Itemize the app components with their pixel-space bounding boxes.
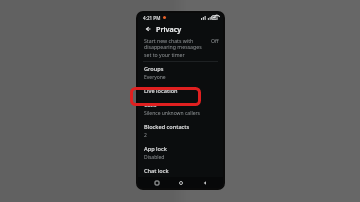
button[interactable]: Start new chats with disappearing messag… <box>138 36 223 61</box>
button[interactable]: Chat lock <box>138 164 223 177</box>
staticText: Disabled <box>144 154 165 161</box>
button[interactable]: Back <box>143 24 153 34</box>
button[interactable]: Recent apps <box>151 177 162 188</box>
staticText: Chat lock <box>144 167 169 174</box>
staticText: Off <box>211 37 219 44</box>
button[interactable]: Groups <box>138 62 223 84</box>
button[interactable]: Live location <box>138 84 223 98</box>
staticText: set to your timer <box>144 51 185 58</box>
staticText: Blocked contacts <box>144 123 190 131</box>
staticText: Start new chats with disappearing messag… <box>144 37 208 51</box>
button[interactable]: Calls <box>138 98 223 120</box>
staticText: Groups <box>144 65 164 73</box>
staticText: Silence unknown callers <box>144 110 201 117</box>
button[interactable]: Blocked contacts <box>138 120 223 142</box>
staticText: Calls <box>144 101 157 109</box>
staticText: 2 <box>144 132 147 139</box>
staticText: Privacy <box>156 24 182 34</box>
button[interactable]: Home <box>175 177 186 188</box>
button[interactable]: App lock <box>138 142 223 164</box>
staticText: 4:21 PM <box>143 15 161 21</box>
staticText: App lock <box>144 145 167 153</box>
button[interactable]: Back <box>199 177 210 188</box>
staticText: Everyone <box>144 74 166 81</box>
staticText: Live location <box>144 87 178 95</box>
